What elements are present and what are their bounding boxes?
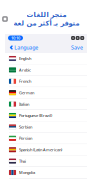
- staticText: Save: [71, 44, 83, 51]
- button[interactable]: Save: [69, 42, 85, 53]
- staticText: Portuguese (Brazil): [19, 113, 52, 118]
- button[interactable]: Spanish (Latin American): [5, 144, 87, 156]
- staticText: متوفر بـ أكثر من لغة: [13, 19, 79, 27]
- staticText: Mongolia: [19, 170, 35, 175]
- button[interactable]: Portuguese (Brazil): [5, 110, 87, 121]
- button[interactable]: German: [5, 87, 87, 99]
- button[interactable]: Persian: [5, 133, 87, 144]
- staticText: French: [19, 79, 31, 84]
- button[interactable]: Serbian: [5, 121, 87, 133]
- button[interactable]: Thai: [5, 156, 87, 167]
- staticText: Language: [14, 44, 38, 51]
- staticText: English: [19, 56, 31, 61]
- button[interactable]: Language: [7, 42, 40, 53]
- button[interactable]: Arabic: [5, 64, 87, 76]
- staticText: متجر اللغات: [26, 11, 66, 18]
- staticText: Serbian: [19, 124, 32, 129]
- button[interactable]: French: [5, 76, 87, 87]
- button[interactable]: Mongolia: [5, 167, 87, 178]
- staticText: Spanish (Latin American): [19, 147, 62, 152]
- staticText: Arabic: [19, 67, 31, 72]
- staticText: Persian: [19, 136, 32, 141]
- staticText: Italian: [19, 101, 29, 107]
- button[interactable]: English: [5, 53, 87, 64]
- staticText: Thai: [19, 158, 26, 164]
- staticText: German: [19, 90, 34, 95]
- staticText: 10:10: [11, 35, 20, 41]
- button[interactable]: Italian: [5, 99, 87, 110]
